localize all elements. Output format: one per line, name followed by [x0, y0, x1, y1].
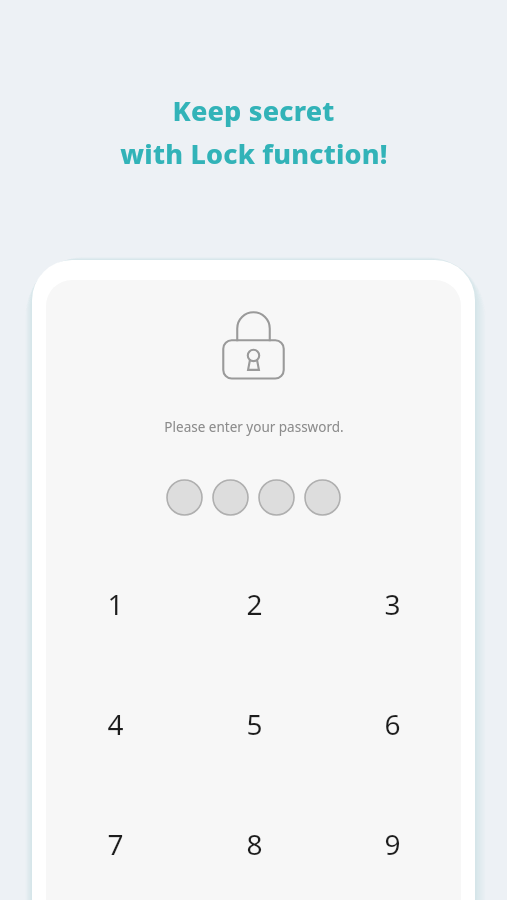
staticText: Please enter your password. [164, 418, 344, 436]
staticText: 4 [107, 705, 124, 743]
staticText: 7 [107, 825, 124, 863]
staticText: 5 [246, 705, 263, 743]
staticText: 9 [384, 825, 401, 863]
button[interactable]: 7 [46, 808, 185, 880]
button[interactable]: 9 [323, 808, 461, 880]
button[interactable]: 3 [323, 568, 461, 640]
staticText: Keep secret [172, 92, 335, 129]
staticText: 8 [246, 825, 263, 863]
other: Locked [221, 309, 286, 381]
button[interactable]: 6 [323, 688, 461, 760]
button[interactable]: 4 [46, 688, 185, 760]
button[interactable]: 5 [185, 688, 323, 760]
button[interactable]: 1 [46, 568, 185, 640]
staticText: 3 [384, 585, 401, 623]
staticText: with Lock function! [120, 135, 388, 172]
staticText: 2 [246, 585, 263, 623]
staticText: 6 [384, 705, 401, 743]
button[interactable]: 8 [185, 808, 323, 880]
button[interactable]: 2 [185, 568, 323, 640]
staticText: 1 [107, 585, 124, 623]
